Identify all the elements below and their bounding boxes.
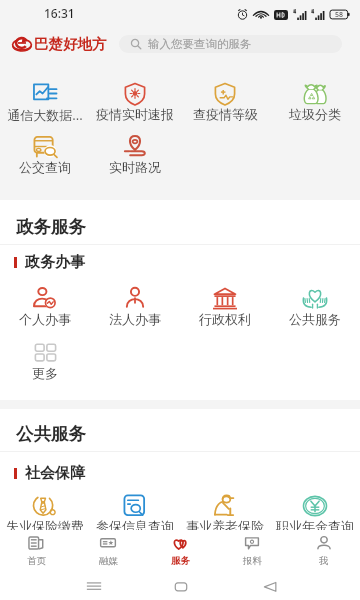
button[interactable]: Home — [170, 575, 192, 597]
staticText: 58 — [335, 10, 344, 20]
staticText: 个人办事 — [19, 311, 71, 327]
staticText: 报料 — [243, 555, 262, 567]
button[interactable]: 法人办事 — [90, 287, 180, 327]
staticText: 政务服务 — [16, 216, 86, 238]
button[interactable]: 实时路况 — [90, 135, 180, 175]
staticText: 服务 — [171, 555, 190, 567]
button[interactable]: 输入您要查询的服务 — [119, 35, 342, 53]
button[interactable]: 行政权利 — [180, 287, 270, 327]
staticText: 16:31 — [44, 5, 75, 21]
button[interactable]: 融媒 — [72, 530, 144, 572]
staticText: 更多 — [32, 365, 58, 381]
staticText: 职业年金查询 — [276, 518, 354, 534]
staticText: 公共服务 — [16, 423, 86, 445]
staticText: 疫情实时速报 — [96, 106, 174, 122]
button[interactable]: 职业年金查询 — [270, 494, 360, 534]
staticText: 首页 — [27, 555, 46, 567]
staticText: 法人办事 — [109, 311, 161, 327]
staticText: 巴楚好地方 — [34, 35, 107, 53]
button[interactable]: 首页 — [0, 530, 72, 572]
staticText: 政务办事 — [25, 253, 85, 272]
staticText: 查疫情等级 — [193, 106, 258, 122]
staticText: 社会保障 — [25, 464, 85, 483]
staticText: 失业保险缴费 — [6, 518, 84, 534]
button[interactable]: 参保信息查询 — [90, 494, 180, 534]
button[interactable]: 公共服务 — [270, 287, 360, 327]
button[interactable]: 公交查询 — [0, 135, 90, 175]
staticText: 参保信息查询 — [96, 518, 174, 534]
button[interactable]: 服务 — [144, 530, 216, 572]
staticText: 实时路况 — [109, 159, 161, 175]
staticText: 公交查询 — [19, 159, 71, 175]
button[interactable]: Recents — [84, 575, 106, 597]
staticText: 输入您要查询的服务 — [148, 37, 252, 51]
button[interactable]: 查疫情等级 — [180, 82, 270, 122]
staticText: 垃圾分类 — [289, 106, 341, 122]
button[interactable]: 事业养老保险 — [180, 494, 270, 534]
staticText: 行政权利 — [199, 311, 251, 327]
staticText: 融媒 — [99, 555, 118, 567]
staticText: 我 — [319, 555, 329, 567]
staticText: 通信大数据... — [7, 106, 83, 124]
button[interactable]: Back — [260, 575, 282, 597]
button[interactable]: 通信大数据... — [0, 82, 90, 124]
button[interactable]: 我 — [288, 530, 360, 572]
button[interactable]: 失业保险缴费 — [0, 494, 90, 534]
button[interactable]: 报料 — [216, 530, 288, 572]
staticText: 公共服务 — [289, 311, 341, 327]
button[interactable]: 疫情实时速报 — [90, 82, 180, 122]
button[interactable]: 垃圾分类 — [270, 82, 360, 122]
button[interactable]: 更多 — [0, 342, 90, 381]
staticText: 事业养老保险 — [186, 518, 264, 534]
button[interactable]: 个人办事 — [0, 287, 90, 327]
